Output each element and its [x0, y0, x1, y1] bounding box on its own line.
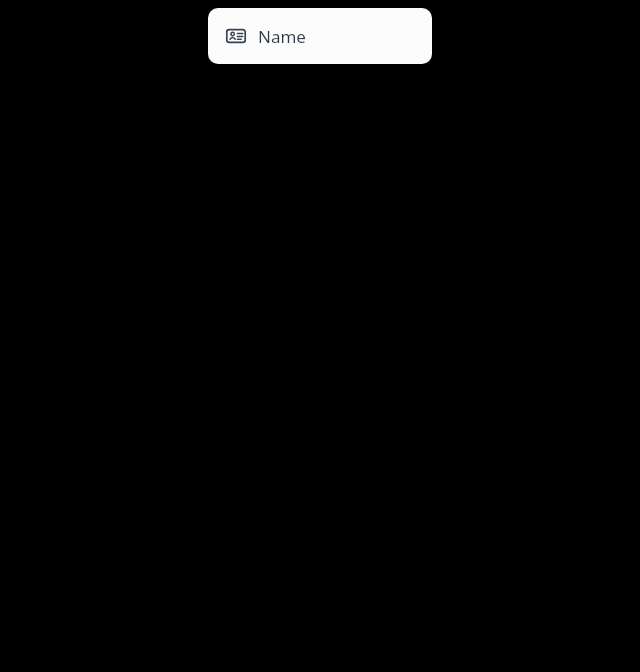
button[interactable]: Name — [208, 8, 432, 64]
staticText: Name — [258, 25, 306, 48]
